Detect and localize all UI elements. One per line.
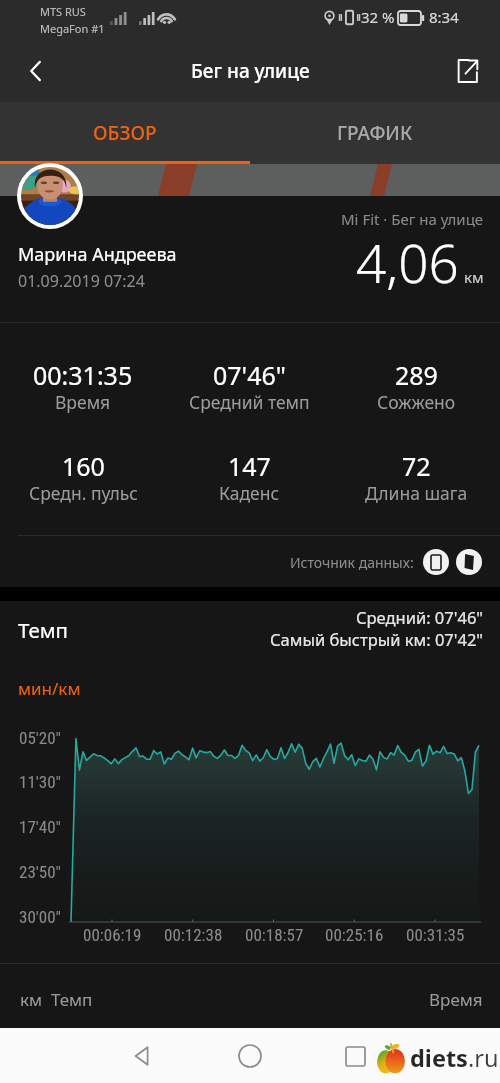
staticText: ОБЗОР <box>93 120 157 146</box>
staticText: 289 <box>395 358 438 392</box>
staticText: 23'50" <box>19 862 61 882</box>
button[interactable]: Open in new window <box>443 47 491 95</box>
staticText: 05'20" <box>19 728 61 748</box>
staticText: Бег на улице <box>191 58 310 84</box>
button[interactable]: Profile photo <box>17 163 83 229</box>
staticText: мин/км <box>18 677 81 700</box>
staticText: 17'40" <box>19 817 61 837</box>
button[interactable]: Back <box>118 1032 166 1080</box>
button[interactable]: ОБЗОР <box>0 102 250 164</box>
staticText: Время <box>55 390 111 414</box>
staticText: 00:12:38 <box>164 925 223 945</box>
staticText: км <box>464 267 484 287</box>
staticText: Сожжено <box>377 390 456 414</box>
button[interactable]: Recent apps <box>331 1032 379 1080</box>
staticText: Каденс <box>219 481 280 505</box>
button[interactable]: ГРАФИК <box>250 102 500 164</box>
staticText: 32 % <box>361 7 395 27</box>
button[interactable]: Back <box>12 47 60 95</box>
staticText: 4,06 <box>356 226 459 298</box>
staticText: 01.09.2019 07:24 <box>18 270 145 292</box>
staticText: 00:31:35 <box>33 358 133 392</box>
staticText: Средний: 07'46" <box>356 606 484 628</box>
button[interactable]: Phone data source <box>423 549 449 575</box>
staticText: Mi Fit · Бег на улице <box>341 209 484 229</box>
button[interactable]: Band data source <box>456 549 482 575</box>
staticText: 30'00" <box>19 907 61 927</box>
staticText: Время <box>429 988 483 1011</box>
staticText: Самый быстрый км: 07'42" <box>270 628 484 650</box>
staticText: 07'46" <box>213 358 287 392</box>
staticText: MTS RUS <box>40 4 86 19</box>
staticText: 8:34 <box>429 7 459 27</box>
staticText: ГРАФИК <box>337 120 413 146</box>
staticText: км Темп <box>20 988 93 1011</box>
staticText: 11'30" <box>19 772 61 792</box>
staticText: 00:25:16 <box>325 925 384 945</box>
staticText: 160 <box>62 449 105 483</box>
staticText: Источник данных: <box>290 553 414 572</box>
staticText: Средний темп <box>189 390 310 414</box>
staticText: Темп <box>18 616 69 644</box>
staticText: 72 <box>402 449 431 483</box>
staticText: MegaFon #1 <box>40 21 105 36</box>
staticText: Марина Андреева <box>18 242 177 267</box>
staticText: 147 <box>228 449 271 483</box>
staticText: 00:18:57 <box>245 925 304 945</box>
staticText: Средн. пульс <box>29 481 138 505</box>
staticText: Длина шага <box>365 481 468 505</box>
staticText: 00:31:35 <box>406 925 465 945</box>
staticText: 00:06:19 <box>83 925 142 945</box>
staticText: .ru <box>468 1042 499 1074</box>
button[interactable]: Home <box>226 1032 274 1080</box>
staticText: diets <box>410 1042 468 1074</box>
